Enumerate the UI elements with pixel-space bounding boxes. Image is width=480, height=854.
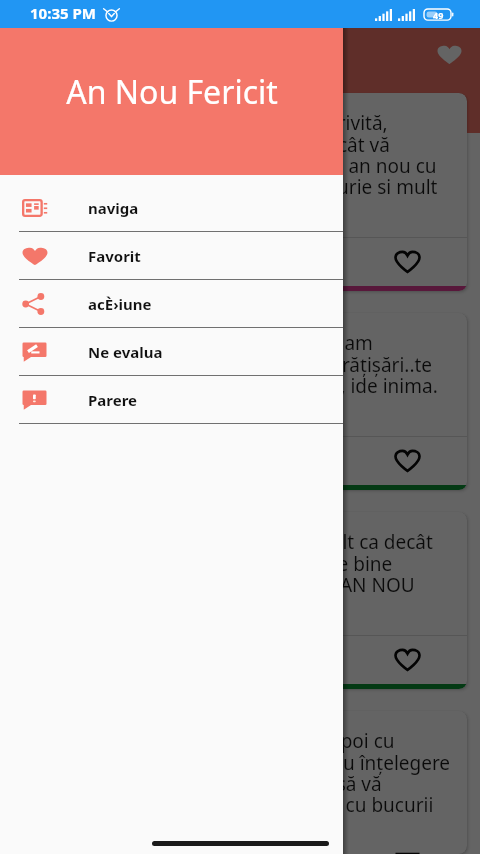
- staticText: Iti trimit mii de sarutari, imbratisari …: [26, 330, 438, 398]
- button[interactable]: Nu imi doresc nimic altceva mai mult ca …: [13, 512, 467, 689]
- staticText: Parere: [88, 390, 138, 410]
- button[interactable]: acÈ›iune: [0, 280, 343, 328]
- button[interactable]: Favorit: [0, 232, 343, 280]
- staticText: naviga: [88, 198, 139, 218]
- button[interactable]: Favorites: [437, 45, 462, 65]
- staticText: Sa fim sanatosi si fericiti cu totii si …: [26, 728, 451, 816]
- staticText: acÈ›iune: [88, 294, 152, 314]
- button[interactable]: Fie ca aceasta sarbatoare sa fie potrivi…: [13, 93, 467, 291]
- staticText: An Nou Fericit: [66, 70, 278, 114]
- button[interactable]: Iti trimit mii de sarutari, imbratisari …: [13, 313, 467, 490]
- staticText: Favorit: [88, 246, 141, 266]
- staticText: Fie ca aceasta sarbatoare sa fie potrivi…: [26, 110, 438, 199]
- staticText: 10:35 PM: [30, 3, 96, 23]
- button[interactable]: Parere: [0, 376, 343, 424]
- staticText: 49: [433, 9, 444, 21]
- button[interactable]: Ne evalua: [0, 328, 343, 376]
- staticText: Ne evalua: [88, 342, 163, 362]
- button[interactable]: Favorite: [395, 649, 420, 671]
- button[interactable]: Favorite: [395, 450, 420, 472]
- button[interactable]: Favorite: [395, 251, 420, 273]
- staticText: Nu imi doresc nimic altceva mai mult ca …: [26, 529, 433, 597]
- button[interactable]: naviga: [0, 184, 343, 232]
- button[interactable]: Sa fim sanatosi si fericiti cu totii si …: [13, 711, 467, 854]
